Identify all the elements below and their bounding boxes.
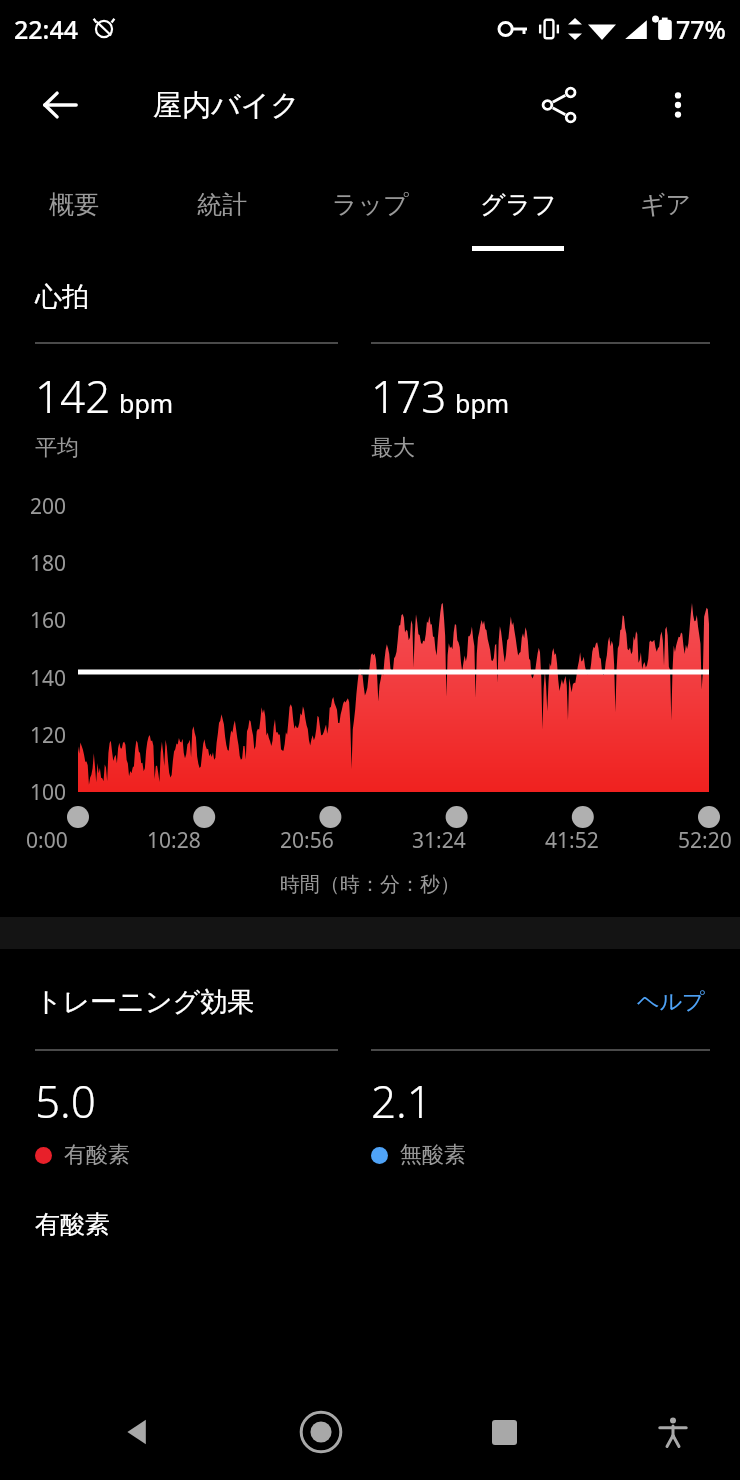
button[interactable]: Recent apps [468,1396,540,1468]
button[interactable]: Accessibility [641,1400,705,1464]
staticText: 180 [30,549,67,578]
button[interactable]: ヘルプ [637,988,705,1016]
staticText: 173 [371,366,447,426]
staticText: 概要 [49,189,99,220]
staticText: 統計 [197,189,247,220]
staticText: 時間（時：分：秒） [0,872,740,897]
button[interactable]: Back [24,69,96,141]
button[interactable]: ラップ [296,152,444,262]
staticText: 20:56 [280,826,334,855]
button[interactable]: 概要 [0,152,148,262]
staticText: 200 [30,492,67,521]
staticText: bpm [455,386,510,420]
staticText: ラップ [332,189,409,220]
staticText: 平均 [35,434,79,462]
button[interactable]: More options [642,69,714,141]
staticText: 140 [30,664,67,693]
button[interactable]: グラフ [444,152,592,262]
staticText: bpm [119,386,174,420]
staticText: ギア [640,189,692,220]
staticText: 屋内バイク [153,87,301,124]
staticText: 77% [676,12,726,46]
staticText: 0:00 [26,826,68,855]
staticText: 5.0 [35,1071,96,1131]
staticText: 100 [30,778,67,807]
staticText: 22:44 [14,12,79,46]
staticText: 31:24 [412,826,466,855]
button[interactable]: Share [524,69,596,141]
staticText: 2.1 [371,1071,432,1131]
staticText: 最大 [371,434,415,462]
staticText: トレーニング効果 [35,985,255,1019]
staticText: 有酸素 [35,1209,110,1240]
staticText: 有酸素 [64,1141,130,1169]
staticText: 142 [35,366,111,426]
button[interactable]: ギア [592,152,740,262]
staticText: 41:52 [545,826,599,855]
staticText: 無酸素 [400,1141,466,1169]
staticText: 心拍 [35,280,89,314]
staticText: 10:28 [147,826,201,855]
staticText: グラフ [480,189,557,220]
button[interactable]: Home [285,1396,357,1468]
staticText: 52:20 [678,826,732,855]
button[interactable]: Back [102,1396,174,1468]
staticText: ヘルプ [637,988,705,1016]
staticText: 120 [30,721,67,750]
button[interactable]: 統計 [148,152,296,262]
staticText: 160 [30,606,67,635]
